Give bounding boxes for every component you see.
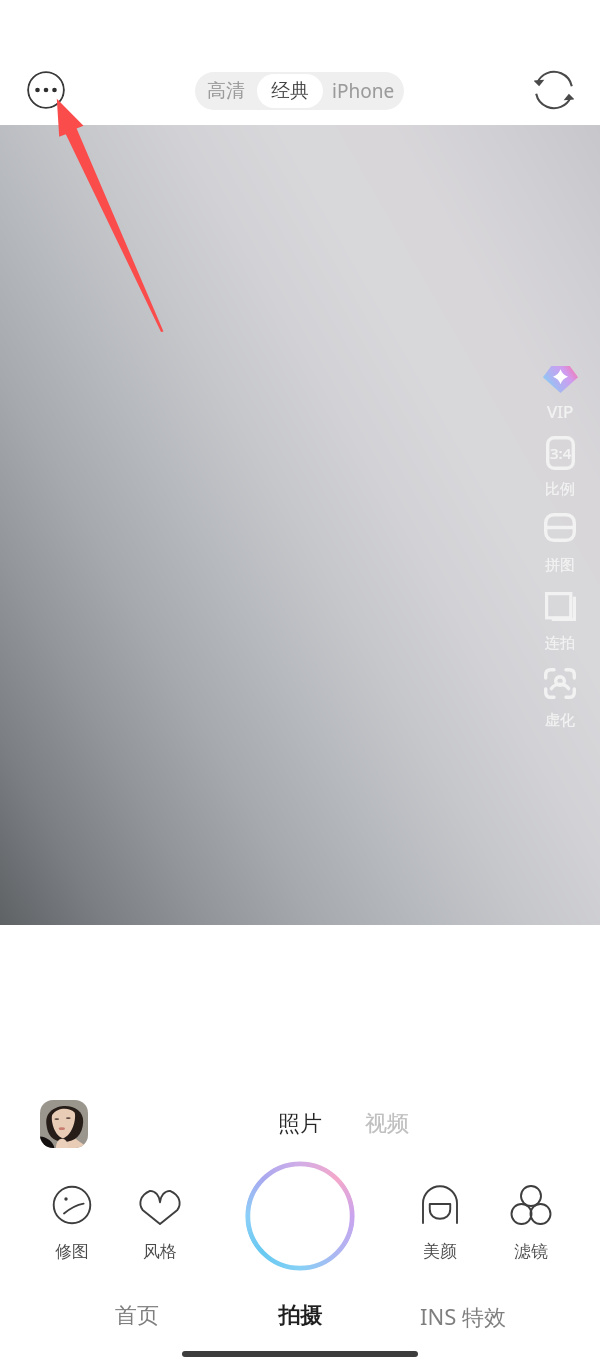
button[interactable]: 美颜 (407, 1185, 473, 1262)
staticText: 比例 (545, 480, 575, 499)
button[interactable]: 比例 (534, 436, 586, 499)
button[interactable]: Switch camera (532, 68, 576, 112)
staticText: VIP (547, 400, 574, 423)
staticText: 3:4 (550, 443, 572, 463)
staticText: 拼图 (545, 556, 575, 575)
button[interactable]: iPhone (323, 72, 404, 110)
staticText: 经典 (271, 79, 309, 103)
staticText: 美颜 (423, 1241, 457, 1262)
button[interactable]: 修图 (39, 1185, 105, 1262)
staticText: 拍摄 (278, 1302, 322, 1330)
staticText: 连拍 (545, 634, 575, 653)
staticText: 视频 (365, 1110, 409, 1138)
button[interactable]: 视频 (355, 1106, 419, 1142)
button[interactable]: 滤镜 (498, 1185, 564, 1262)
staticText: INS 特效 (420, 1301, 506, 1331)
staticText: 首页 (115, 1302, 159, 1330)
button[interactable]: More options (27, 71, 65, 109)
staticText: 滤镜 (514, 1241, 548, 1262)
button[interactable]: Shutter (245, 1161, 355, 1271)
staticText: 修图 (55, 1241, 89, 1262)
staticText: 高清 (207, 79, 245, 103)
button[interactable]: 虚化 (534, 668, 586, 730)
button[interactable]: 风格 (127, 1185, 193, 1262)
button[interactable]: Gallery (40, 1100, 88, 1148)
button[interactable]: 照片 (268, 1106, 332, 1142)
button[interactable]: 经典 (257, 74, 323, 108)
staticText: 照片 (278, 1110, 322, 1138)
staticText: 风格 (143, 1241, 177, 1262)
button[interactable]: VIP (534, 366, 586, 423)
button[interactable]: 拼图 (534, 513, 586, 575)
button[interactable]: 首页 (73, 1298, 201, 1334)
staticText: 虚化 (545, 711, 575, 730)
staticText: iPhone (332, 78, 395, 104)
button[interactable]: INS 特效 (399, 1298, 527, 1334)
button[interactable]: 连拍 (534, 592, 586, 653)
button[interactable]: 高清 (195, 72, 257, 110)
button[interactable]: 拍摄 (236, 1298, 364, 1334)
